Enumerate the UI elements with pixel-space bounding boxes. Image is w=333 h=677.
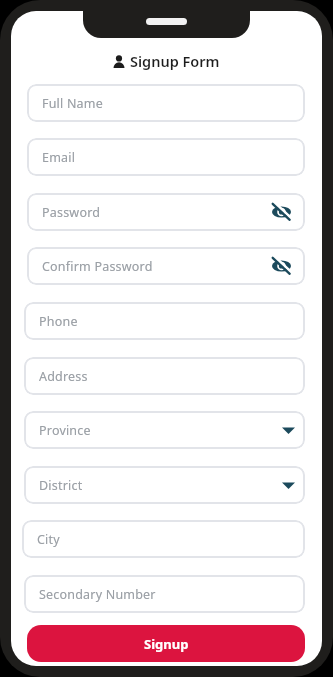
staticText: Signup bbox=[144, 635, 189, 653]
button[interactable]: Province bbox=[24, 411, 305, 449]
staticText: City bbox=[37, 531, 60, 548]
button[interactable]: District bbox=[24, 466, 305, 504]
button[interactable]: Full Name bbox=[27, 84, 305, 122]
button[interactable]: Phone bbox=[24, 302, 305, 340]
staticText: Full Name bbox=[42, 95, 103, 112]
staticText: Signup Form bbox=[130, 51, 220, 71]
button[interactable]: Confirm Password bbox=[27, 247, 305, 285]
button[interactable]: Password bbox=[27, 193, 305, 231]
staticText: Secondary Number bbox=[39, 586, 156, 603]
button[interactable]: Email bbox=[27, 138, 305, 176]
staticText: District bbox=[39, 477, 83, 494]
button[interactable]: Signup bbox=[27, 625, 305, 662]
staticText: Email bbox=[42, 149, 76, 166]
button[interactable]: City bbox=[22, 520, 305, 558]
staticText: Address bbox=[39, 368, 88, 385]
staticText: Password bbox=[42, 204, 101, 221]
staticText: Confirm Password bbox=[42, 258, 153, 275]
button[interactable]: Address bbox=[24, 357, 305, 395]
staticText: Province bbox=[39, 422, 91, 439]
button[interactable]: Secondary Number bbox=[24, 575, 305, 613]
staticText: Phone bbox=[39, 313, 78, 330]
